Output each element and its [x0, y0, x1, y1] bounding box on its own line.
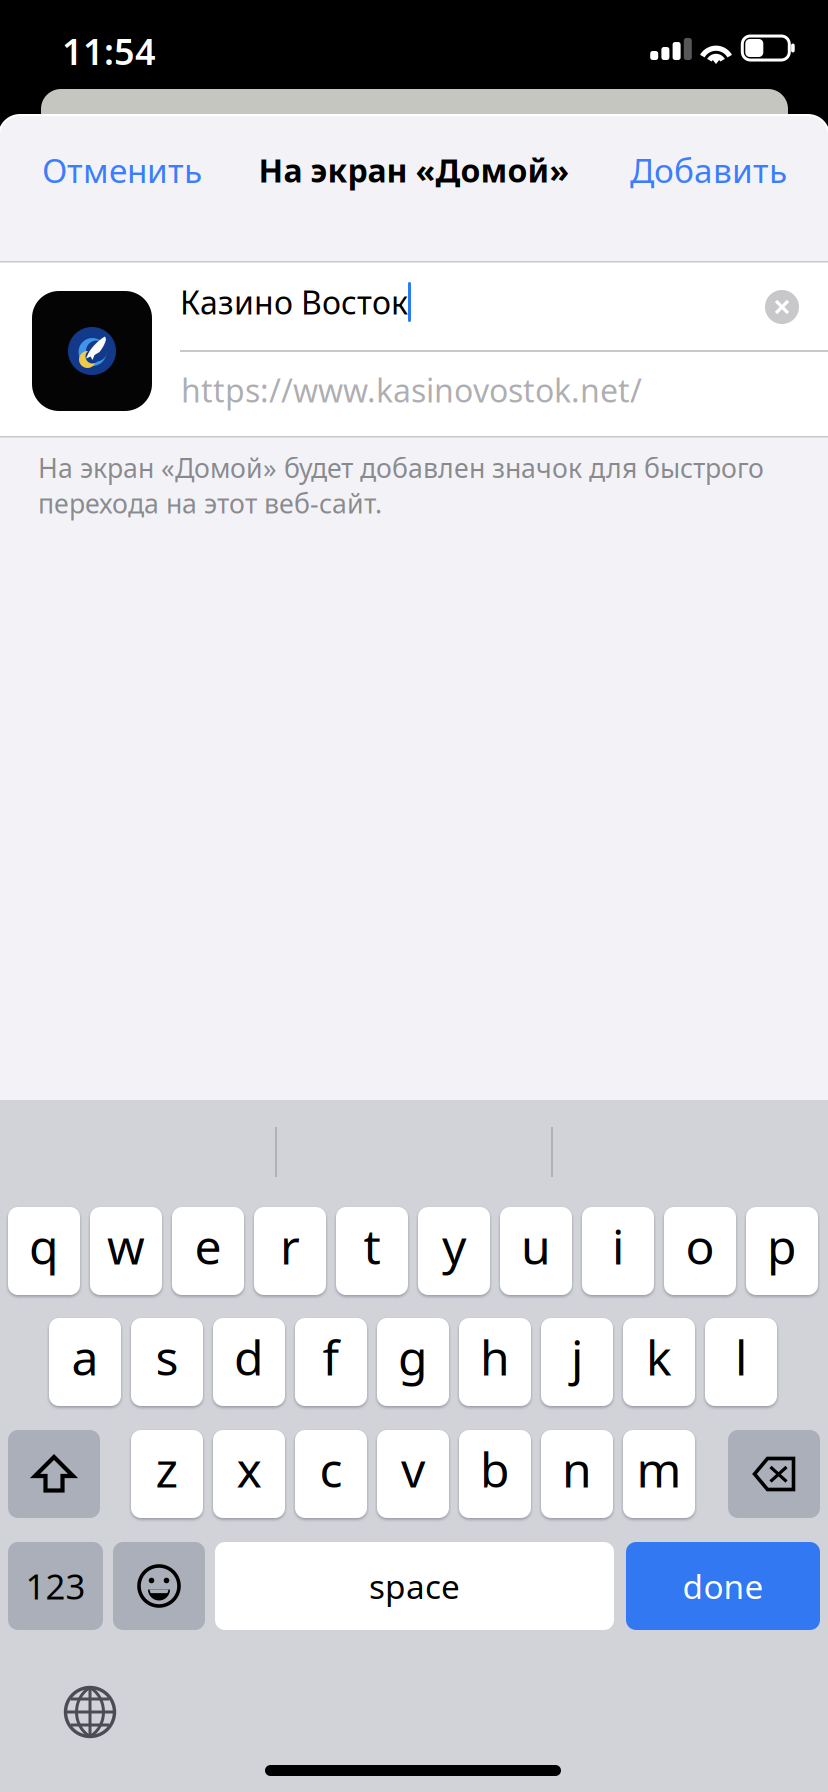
- button[interactable]: Shift: [8, 1430, 100, 1518]
- staticText: Отменить: [42, 148, 202, 192]
- staticText: g: [398, 1325, 428, 1389]
- staticText: На экран «Домой» будет добавлен значок д…: [38, 450, 764, 485]
- button[interactable]: r: [254, 1207, 326, 1295]
- button[interactable]: 123: [8, 1542, 103, 1630]
- staticText: p: [767, 1214, 797, 1278]
- button[interactable]: Delete: [728, 1430, 820, 1518]
- staticText: t: [363, 1214, 380, 1278]
- button[interactable]: Отменить: [42, 145, 252, 195]
- staticText: x: [236, 1437, 261, 1501]
- staticText: v: [401, 1437, 425, 1501]
- button[interactable]: f: [295, 1318, 367, 1406]
- staticText: Казино Восток: [180, 281, 408, 323]
- button[interactable]: c: [295, 1430, 367, 1518]
- staticText: d: [234, 1325, 264, 1389]
- staticText: space: [369, 1564, 460, 1608]
- staticText: done: [682, 1564, 763, 1608]
- staticText: Добавить: [630, 148, 787, 192]
- button[interactable]: q: [8, 1207, 80, 1295]
- staticText: y: [442, 1214, 466, 1278]
- staticText: f: [322, 1325, 339, 1389]
- staticText: i: [612, 1214, 624, 1278]
- staticText: r: [280, 1214, 300, 1278]
- staticText: 11:54: [62, 27, 156, 75]
- button[interactable]: x: [213, 1430, 285, 1518]
- staticText: j: [571, 1325, 583, 1389]
- staticText: c: [319, 1437, 342, 1501]
- button[interactable]: p: [746, 1207, 818, 1295]
- button[interactable]: v: [377, 1430, 449, 1518]
- button[interactable]: t: [336, 1207, 408, 1295]
- staticText: h: [480, 1325, 510, 1389]
- staticText: b: [480, 1437, 510, 1501]
- staticText: n: [562, 1437, 592, 1501]
- button[interactable]: Добавить: [580, 145, 787, 195]
- staticText: k: [646, 1325, 672, 1389]
- staticText: w: [107, 1214, 145, 1278]
- button[interactable]: o: [664, 1207, 736, 1295]
- button[interactable]: b: [459, 1430, 531, 1518]
- staticText: s: [155, 1325, 178, 1389]
- staticText: a: [71, 1325, 98, 1389]
- button[interactable]: m: [623, 1430, 695, 1518]
- button[interactable]: done: [626, 1542, 820, 1630]
- staticText: o: [685, 1214, 714, 1278]
- button[interactable]: l: [705, 1318, 777, 1406]
- button[interactable]: n: [541, 1430, 613, 1518]
- button[interactable]: j: [541, 1318, 613, 1406]
- staticText: На экран «Домой»: [258, 149, 569, 191]
- staticText: l: [735, 1325, 747, 1389]
- staticText: z: [155, 1437, 178, 1501]
- staticText: m: [636, 1437, 681, 1501]
- button[interactable]: d: [213, 1318, 285, 1406]
- button[interactable]: u: [500, 1207, 572, 1295]
- button[interactable]: g: [377, 1318, 449, 1406]
- button[interactable]: Clear text: [760, 285, 804, 329]
- button[interactable]: a: [49, 1318, 121, 1406]
- staticText: https://www.kasinovostok.net/: [181, 369, 642, 411]
- staticText: перехода на этот веб-сайт.: [38, 485, 382, 521]
- button[interactable]: z: [131, 1430, 203, 1518]
- button[interactable]: Switch keyboard: [64, 1686, 116, 1738]
- button[interactable]: Emoji keyboard: [113, 1542, 205, 1630]
- button[interactable]: i: [582, 1207, 654, 1295]
- staticText: q: [29, 1214, 59, 1278]
- staticText: e: [194, 1214, 221, 1278]
- button[interactable]: e: [172, 1207, 244, 1295]
- button[interactable]: w: [90, 1207, 162, 1295]
- button[interactable]: y: [418, 1207, 490, 1295]
- staticText: u: [521, 1214, 551, 1278]
- button[interactable]: space: [215, 1542, 614, 1630]
- button[interactable]: k: [623, 1318, 695, 1406]
- button[interactable]: h: [459, 1318, 531, 1406]
- staticText: 123: [25, 1563, 85, 1609]
- button[interactable]: s: [131, 1318, 203, 1406]
